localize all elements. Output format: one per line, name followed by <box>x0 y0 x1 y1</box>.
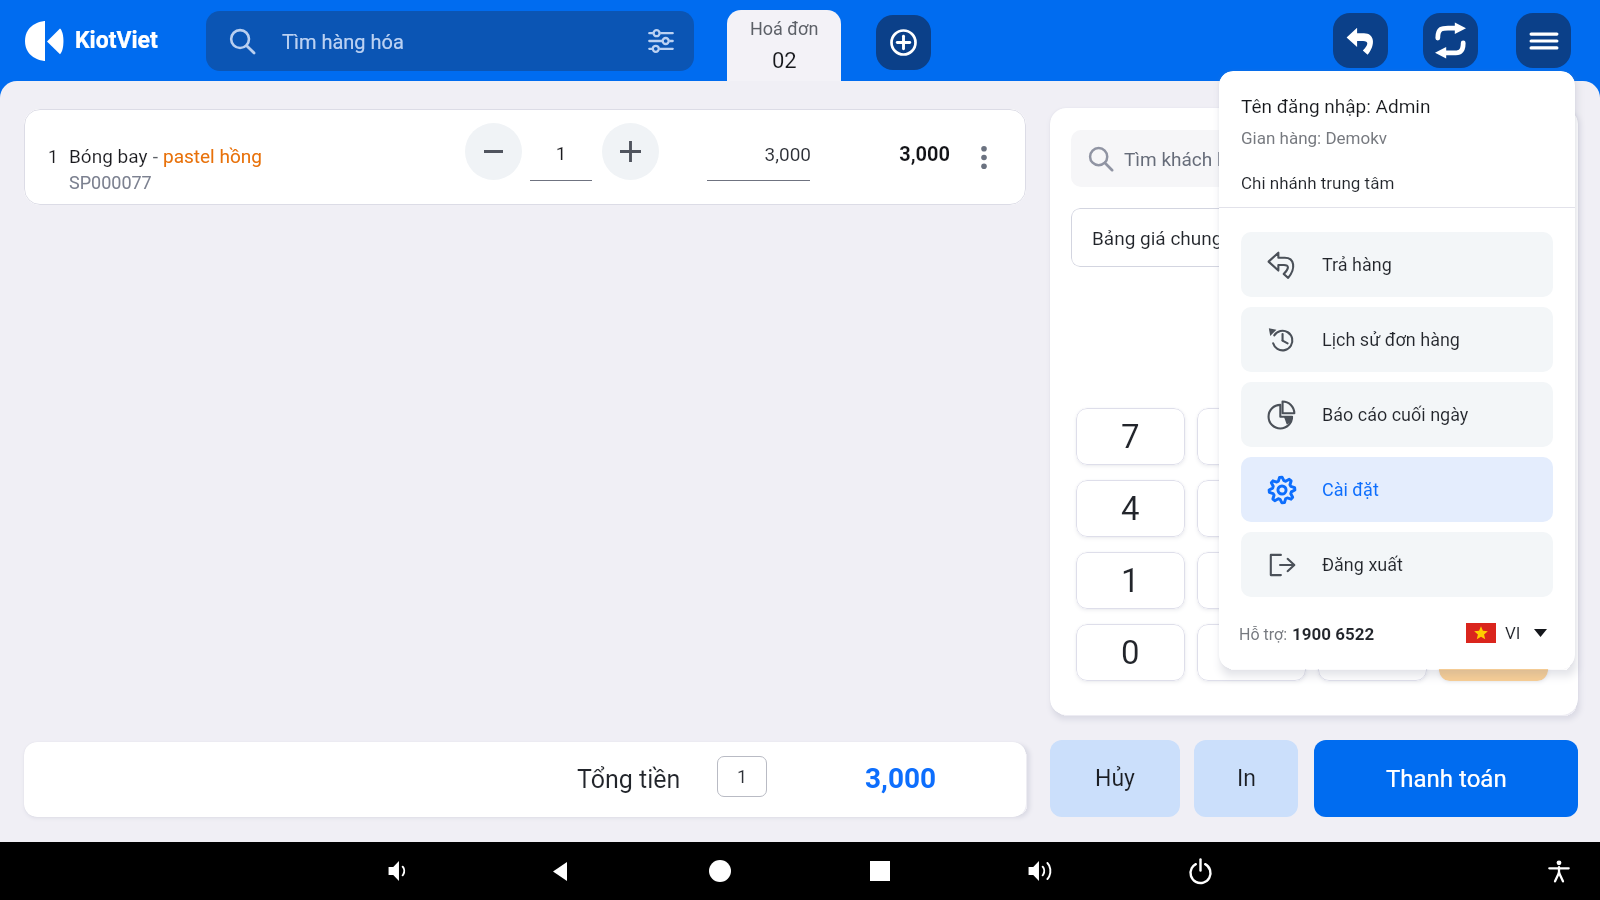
button[interactable]: Tuỳ chọn <box>963 136 1005 178</box>
button[interactable]: Trả hàng <box>1241 232 1553 297</box>
button[interactable]: Thanh toán <box>1314 740 1578 817</box>
staticText: 3,000 <box>865 762 937 795</box>
button[interactable]: Cài đặt <box>1241 457 1553 522</box>
button[interactable]: Tăng âm lượng <box>1025 856 1055 886</box>
staticText: Thanh toán <box>1386 765 1507 793</box>
staticText: Báo cáo cuối ngày <box>1322 404 1469 425</box>
button[interactable]: Tìm khách hàng <box>1071 130 1557 187</box>
staticText: Hoá đơn <box>750 18 819 39</box>
button[interactable]: 9 <box>1318 408 1427 465</box>
staticText: Hỗ trợ: <box>1239 625 1292 644</box>
button[interactable]: 1 <box>717 756 767 797</box>
staticText: 7 <box>1121 417 1140 456</box>
button[interactable]: 00 <box>1197 624 1306 681</box>
button[interactable]: 1 <box>24 109 1026 205</box>
button[interactable]: . <box>1318 624 1427 681</box>
staticText: 1 <box>1121 561 1140 600</box>
staticText: = <box>1484 633 1503 672</box>
button[interactable]: 4 <box>1076 480 1185 537</box>
staticText: 1 <box>737 766 748 787</box>
staticText: Gian hàng: Demokv <box>1241 128 1388 148</box>
button[interactable]: x <box>1439 552 1548 609</box>
staticText: 02 <box>772 48 797 74</box>
staticText: Tìm khách hàng <box>1124 148 1259 170</box>
staticText: Lịch sử đơn hàng <box>1322 329 1460 350</box>
staticText: Bóng bay <box>69 145 148 167</box>
staticText: 1900 6522 <box>1292 624 1375 644</box>
staticText: 8 <box>1242 417 1261 456</box>
button[interactable]: 6 <box>1318 480 1427 537</box>
staticText: 3,000 <box>844 142 950 165</box>
staticText: pastel hồng <box>163 145 262 167</box>
staticText: In <box>1237 765 1256 792</box>
button[interactable]: 1 <box>1076 552 1185 609</box>
staticText: KiotViet <box>75 27 158 54</box>
staticText: 1 <box>530 142 592 164</box>
staticText: 9 <box>1363 417 1382 456</box>
button[interactable]: Hoàn tác <box>1333 13 1388 68</box>
staticText: 5 <box>1242 489 1261 528</box>
button[interactable]: Ứng dụng gần đây <box>865 856 895 886</box>
button[interactable]: 5 <box>1197 480 1306 537</box>
staticText: Hủy <box>1095 765 1135 792</box>
button[interactable]: Bảng giá chung <box>1071 208 1557 267</box>
staticText: Trả hàng <box>1322 254 1392 275</box>
staticText: VI <box>1505 623 1521 643</box>
button[interactable]: + <box>1439 408 1548 465</box>
staticText: Bảng giá chung <box>1092 227 1223 249</box>
staticText: - <box>1489 489 1499 528</box>
staticText: + <box>1484 417 1503 456</box>
staticText: SP000077 <box>69 172 152 193</box>
staticText: Cài đặt <box>1322 479 1379 500</box>
staticText: 3 <box>1363 561 1382 600</box>
staticText: Tổng tiền <box>577 765 681 794</box>
staticText: 3,000 <box>684 143 811 165</box>
button[interactable]: Hoá đơn <box>727 10 841 81</box>
staticText: Tìm hàng hóa <box>282 30 404 53</box>
button[interactable]: Giảm <box>465 123 522 180</box>
button[interactable]: 7 <box>1076 408 1185 465</box>
button[interactable]: Giảm âm lượng <box>385 856 415 886</box>
staticText: 1 <box>48 146 59 167</box>
button[interactable]: Đăng xuất <box>1241 532 1553 597</box>
staticText: Chi nhánh trung tâm <box>1241 173 1395 193</box>
staticText: 6 <box>1363 489 1382 528</box>
staticText: Tên đăng nhập: Admin <box>1241 95 1431 117</box>
button[interactable]: Tìm hàng hóa <box>206 11 694 71</box>
button[interactable]: Màn hình chính <box>705 856 735 886</box>
staticText: 2 <box>1242 561 1261 600</box>
staticText: - <box>148 145 163 167</box>
button[interactable]: Lịch sử đơn hàng <box>1241 307 1553 372</box>
staticText: 4 <box>1121 489 1140 528</box>
staticText: Đăng xuất <box>1322 554 1403 575</box>
button[interactable]: 0 <box>1076 624 1185 681</box>
button[interactable]: Menu <box>1516 13 1571 68</box>
button[interactable]: In <box>1194 740 1298 817</box>
button[interactable]: Hủy <box>1050 740 1180 817</box>
button[interactable]: Nguồn <box>1185 856 1215 886</box>
button[interactable]: 8 <box>1197 408 1306 465</box>
button[interactable]: 2 <box>1197 552 1306 609</box>
button[interactable]: Đồng bộ <box>1423 13 1478 68</box>
button[interactable]: Thêm hoá đơn <box>876 15 931 70</box>
button[interactable]: - <box>1439 480 1548 537</box>
staticText: . <box>1368 633 1377 672</box>
staticText: x <box>1485 561 1502 600</box>
staticText: 00 <box>1233 633 1271 672</box>
button[interactable]: = <box>1439 624 1548 681</box>
button[interactable]: Báo cáo cuối ngày <box>1241 382 1553 447</box>
button[interactable]: Trợ năng <box>1544 856 1574 886</box>
button[interactable]: 3 <box>1318 552 1427 609</box>
staticText: 0 <box>1121 633 1140 672</box>
button[interactable]: Tăng <box>602 123 659 180</box>
button[interactable]: Quay lại <box>545 856 575 886</box>
